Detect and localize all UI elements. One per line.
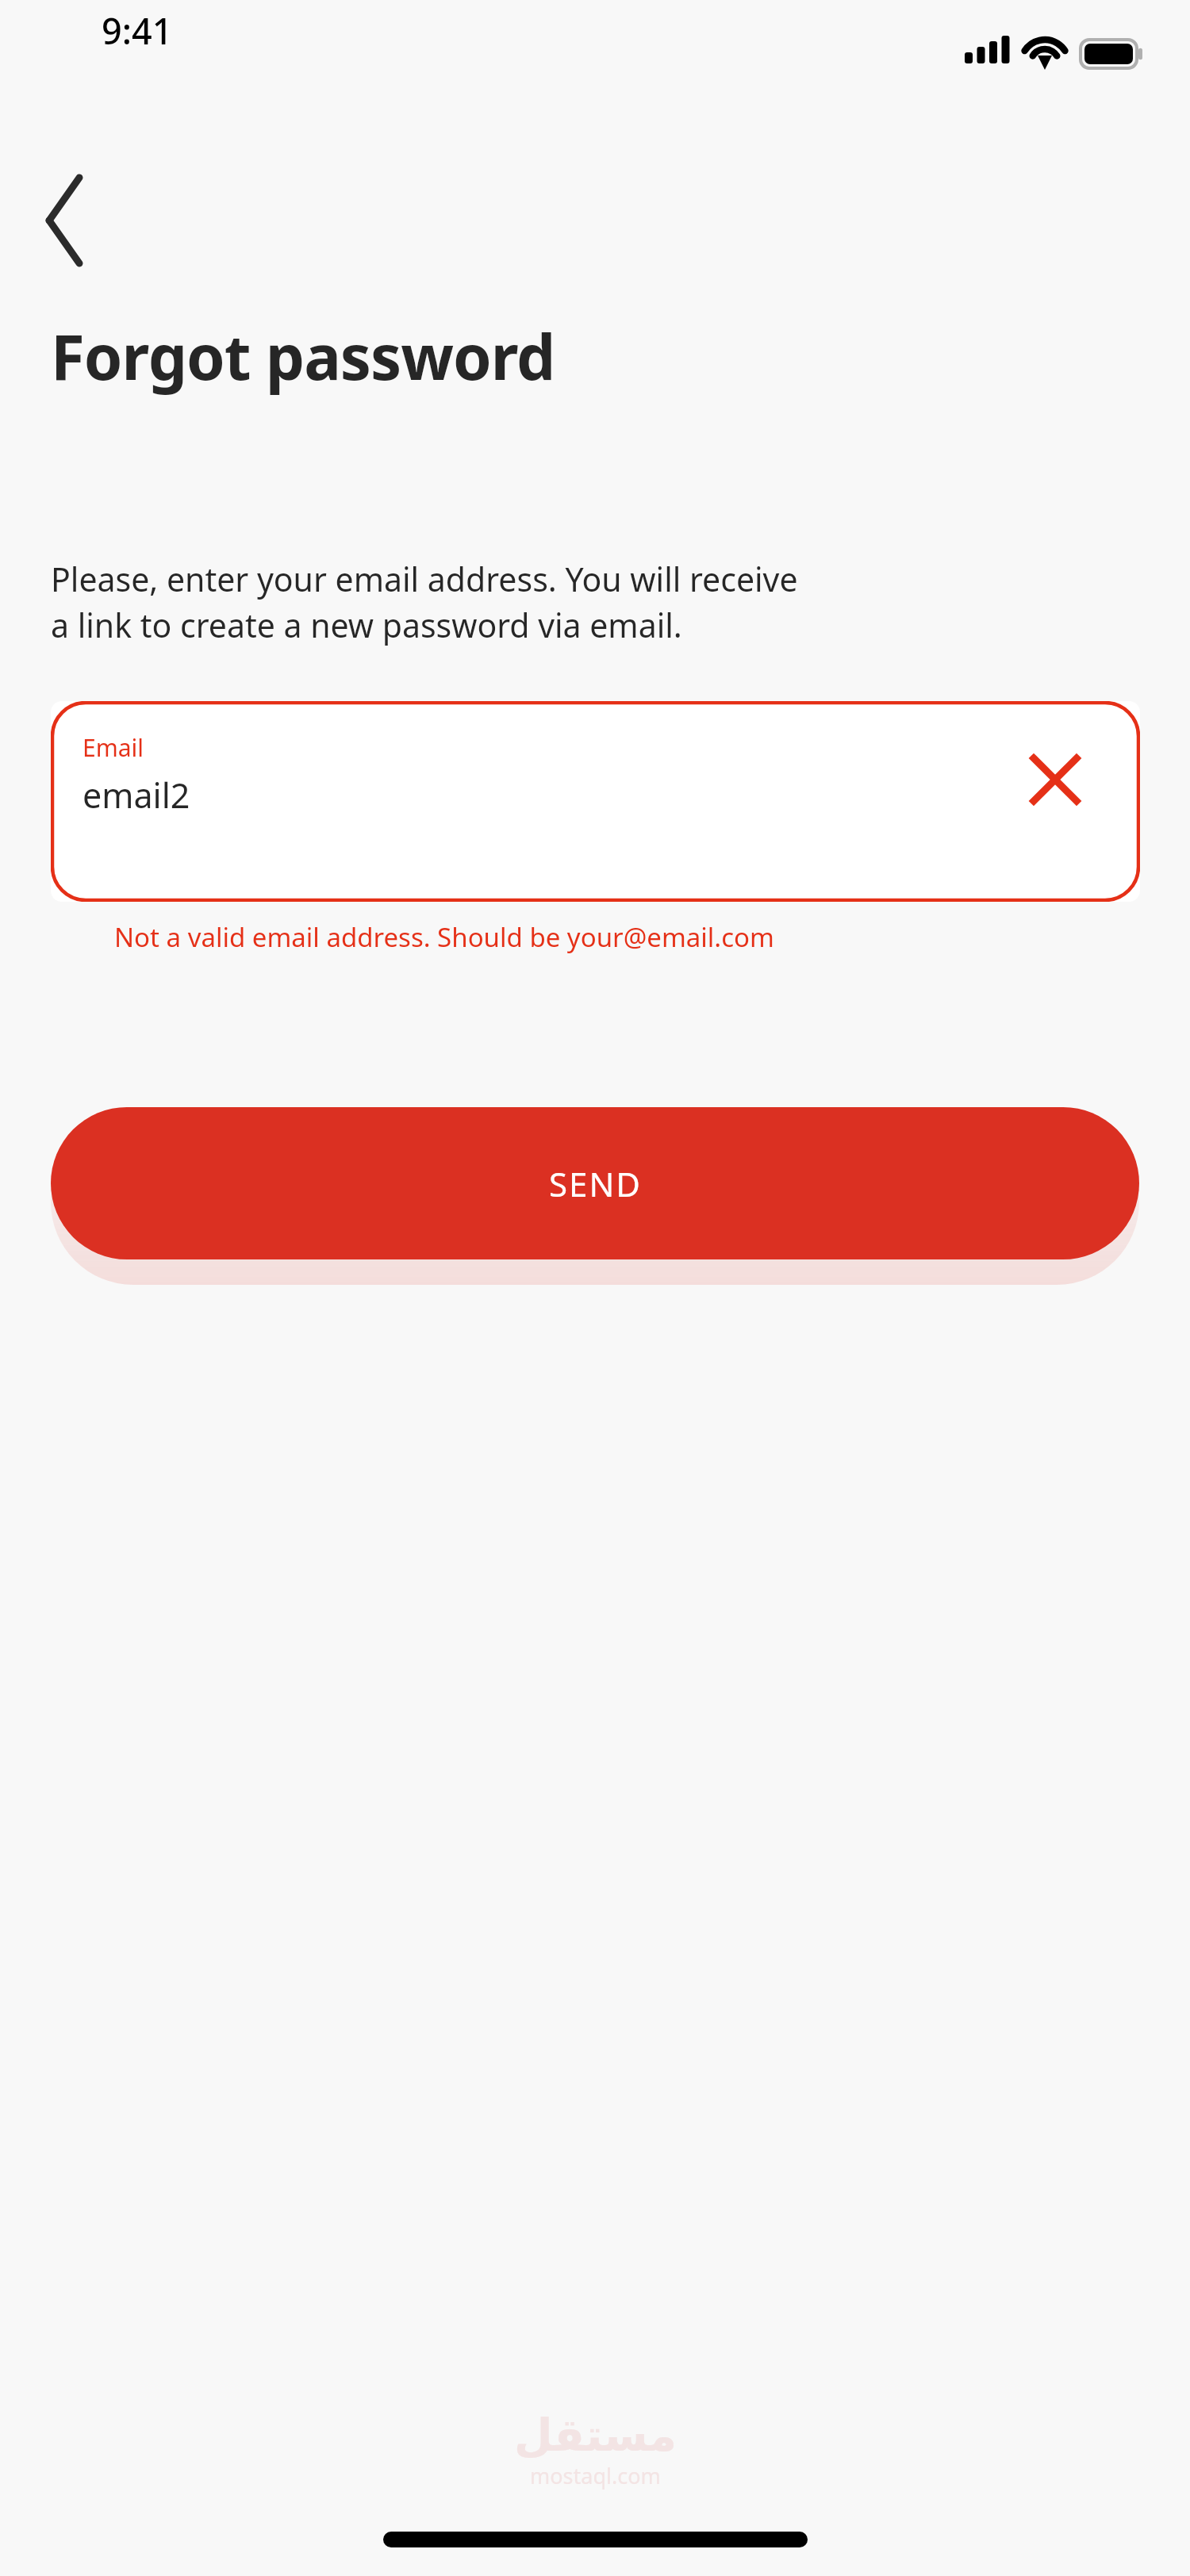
button[interactable]: Clear email (1031, 755, 1080, 804)
staticText: SEND (549, 1161, 642, 1206)
staticText: Forgot password (51, 314, 555, 398)
staticText: مستقل (514, 2409, 677, 2461)
staticText: email2 (83, 772, 190, 818)
staticText: Email (83, 731, 144, 764)
button[interactable]: Back (24, 160, 106, 281)
button[interactable]: SEND (51, 1107, 1139, 1259)
staticText: Please, enter your email address. You wi… (51, 557, 798, 647)
staticText: Not a valid email address. Should be you… (114, 919, 774, 955)
button[interactable]: Email (51, 701, 1140, 902)
staticText: mostaql.com (530, 2461, 661, 2490)
staticText: 9:41 (102, 6, 173, 55)
